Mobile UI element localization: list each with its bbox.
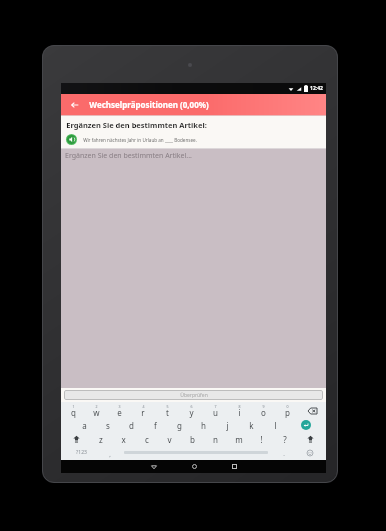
staticText: l (274, 420, 277, 431)
staticText: k (249, 420, 254, 431)
staticText: f (154, 420, 157, 431)
button[interactable]: ?123 (62, 446, 100, 459)
staticText: p (285, 407, 290, 418)
button[interactable]: x (112, 432, 135, 446)
button[interactable]: a (73, 418, 96, 432)
staticText: Überprüfen (180, 392, 208, 399)
staticText: s (106, 420, 110, 431)
button[interactable]: m (227, 432, 250, 446)
staticText: , (109, 451, 111, 459)
button[interactable]: 7 (203, 403, 227, 418)
button[interactable]: Recents (214, 460, 254, 473)
button[interactable]: , (100, 446, 120, 459)
button[interactable]: z (90, 432, 112, 446)
staticText: d (129, 420, 134, 431)
staticText: h (201, 420, 206, 431)
button[interactable]: c (135, 432, 158, 446)
button[interactable]: 9 (251, 403, 275, 418)
staticText: 4 (142, 404, 145, 409)
staticText: x (121, 434, 126, 445)
button[interactable]: Play audio (66, 134, 77, 145)
staticText: v (167, 434, 172, 445)
button[interactable]: Überprüfen (64, 390, 323, 400)
button[interactable]: j (215, 418, 239, 432)
staticText: u (213, 407, 218, 418)
button[interactable]: 3 (108, 403, 131, 418)
staticText: z (99, 434, 103, 445)
button[interactable]: Home (174, 460, 214, 473)
staticText: w (93, 407, 100, 418)
button[interactable]: Ergänzen Sie den bestimmten Artikel... (61, 149, 326, 162)
button[interactable]: ? (273, 432, 296, 446)
staticText: 12:42 (310, 85, 323, 92)
staticText: j (226, 420, 229, 431)
staticText: 7 (214, 404, 217, 409)
button[interactable]: Emoji (295, 446, 325, 459)
staticText: ? (283, 434, 287, 445)
button[interactable]: Back (134, 460, 174, 473)
staticText: 3 (118, 404, 121, 409)
staticText: i (238, 407, 241, 418)
button[interactable]: 4 (131, 403, 155, 418)
staticText: t (166, 407, 169, 418)
staticText: . (283, 450, 285, 458)
button[interactable]: Enter (287, 418, 325, 432)
button[interactable]: n (204, 432, 227, 446)
button[interactable]: Shift (62, 432, 90, 446)
staticText: c (145, 434, 149, 445)
staticText: Wechselpräpositionen (0,00%) (89, 99, 209, 110)
button[interactable]: 0 (275, 403, 299, 418)
button[interactable]: 1 (62, 403, 85, 418)
button[interactable]: ! (250, 432, 273, 446)
button[interactable]: f (143, 418, 167, 432)
button[interactable]: Space (120, 446, 272, 459)
staticText: m (235, 434, 243, 445)
button[interactable]: v (158, 432, 181, 446)
staticText: g (177, 420, 182, 431)
staticText: e (117, 407, 122, 418)
staticText: q (71, 407, 76, 418)
button[interactable]: Back (68, 98, 82, 112)
button[interactable]: g (167, 418, 191, 432)
staticText: r (141, 407, 145, 418)
staticText: Ergänzen Sie den bestimmten Artikel: (66, 120, 207, 130)
staticText: ! (260, 434, 263, 445)
staticText: 1 (72, 404, 75, 409)
button[interactable]: d (119, 418, 143, 432)
button[interactable]: 5 (155, 403, 179, 418)
staticText: 2 (95, 404, 98, 409)
staticText: Wir fahren nächstes Jahr in Urlaub an __… (83, 137, 197, 143)
staticText: Ergänzen Sie den bestimmten Artikel... (65, 151, 192, 161)
staticText: n (213, 434, 218, 445)
staticText: 0 (286, 404, 289, 409)
button[interactable]: 6 (179, 403, 203, 418)
button[interactable]: h (191, 418, 215, 432)
staticText: ?123 (76, 449, 87, 456)
staticText: 9 (262, 404, 265, 409)
button[interactable]: Shift (296, 432, 325, 446)
staticText: b (190, 434, 195, 445)
staticText: 6 (190, 404, 193, 409)
staticText: o (261, 407, 266, 418)
staticText: a (82, 420, 87, 431)
button[interactable]: 8 (227, 403, 251, 418)
button[interactable]: b (181, 432, 204, 446)
button[interactable]: l (263, 418, 287, 432)
button[interactable]: k (239, 418, 263, 432)
staticText: 5 (166, 404, 169, 409)
button[interactable]: s (96, 418, 119, 432)
button[interactable]: Backspace (299, 403, 325, 418)
staticText: 8 (238, 404, 241, 409)
staticText: y (189, 407, 194, 418)
button[interactable]: 2 (85, 403, 108, 418)
